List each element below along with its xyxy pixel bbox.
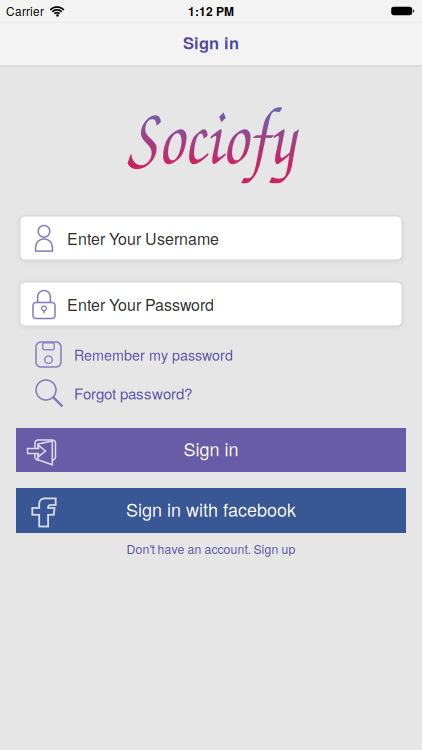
textField[interactable]: Enter Your Password	[67, 292, 402, 315]
button[interactable]: Don't have an account. Sign up	[126, 540, 295, 557]
textField[interactable]: Enter Your Username	[67, 226, 402, 249]
button[interactable]: Forgot password?	[0, 377, 422, 409]
button[interactable]: Sign in with facebook	[16, 488, 406, 533]
staticText: Sign in with facebook	[126, 496, 296, 522]
staticText: 1:12 PM	[188, 2, 234, 20]
staticText: Sign in	[183, 436, 238, 461]
button[interactable]: Remember my password	[0, 341, 422, 368]
staticText: Remember my password	[74, 344, 233, 365]
staticText: Forgot password?	[74, 382, 192, 404]
staticText: Carrier	[6, 3, 44, 19]
button[interactable]: Sign in	[16, 428, 406, 472]
staticText: Enter Your Username	[67, 226, 219, 249]
staticText: Enter Your Password	[67, 292, 214, 315]
staticText: Sign in	[183, 31, 239, 54]
staticText: Don't have an account. Sign up	[126, 540, 295, 557]
